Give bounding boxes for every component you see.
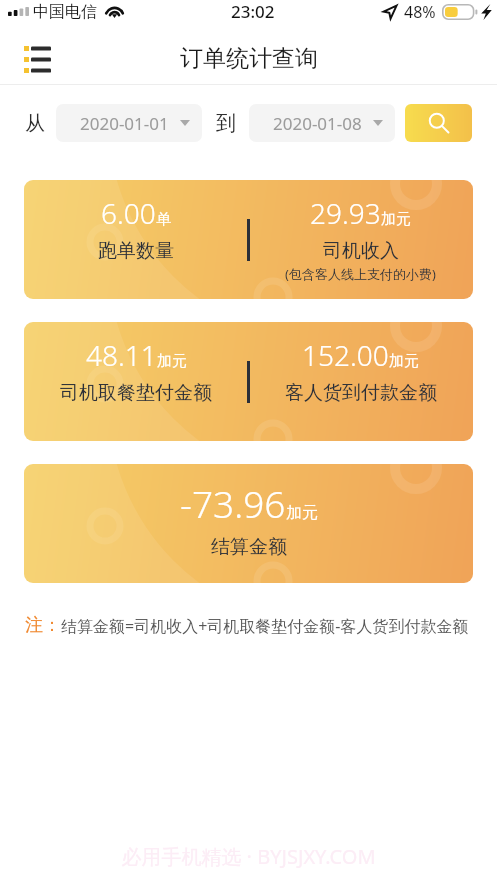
- staticText: 152.00: [302, 336, 389, 374]
- staticText: 结算金额=司机收入+司机取餐垫付金额-客人货到付款金额: [61, 615, 469, 637]
- staticText: 到: [216, 111, 236, 136]
- staticText: 29.93: [310, 194, 381, 232]
- staticText: 单: [156, 210, 171, 229]
- staticText: 6.00: [101, 194, 156, 232]
- staticText: 司机收入: [323, 239, 399, 263]
- staticText: 结算金额: [211, 535, 287, 559]
- button[interactable]: Menu: [14, 35, 62, 83]
- button[interactable]: -73.96: [24, 464, 473, 583]
- staticText: 注：: [25, 614, 61, 637]
- staticText: 48%: [404, 1, 436, 23]
- staticText: 从: [25, 111, 45, 136]
- staticText: (包含客人线上支付的小费): [285, 265, 436, 283]
- staticText: 必用手机精选 · BYJSJXY.COM: [121, 843, 376, 870]
- staticText: 加元: [157, 352, 187, 371]
- staticText: 中国电信: [33, 2, 97, 22]
- staticText: 司机取餐垫付金额: [60, 381, 212, 405]
- staticText: 加元: [286, 503, 318, 523]
- staticText: 2020-01-01: [80, 112, 169, 135]
- staticText: 订单统计查询: [180, 44, 318, 73]
- staticText: 2020-01-08: [273, 112, 362, 135]
- button[interactable]: 48.11: [24, 322, 473, 441]
- staticText: 跑单数量: [98, 239, 174, 263]
- button[interactable]: 6.00: [24, 180, 473, 299]
- staticText: -73.96: [180, 478, 286, 528]
- staticText: 23:02: [231, 0, 275, 23]
- staticText: 加元: [381, 210, 411, 229]
- button[interactable]: 2020-01-01: [56, 104, 202, 142]
- staticText: 客人货到付款金额: [285, 381, 437, 405]
- button[interactable]: 2020-01-08: [249, 104, 395, 142]
- staticText: 48.11: [86, 336, 157, 374]
- staticText: 加元: [389, 352, 419, 371]
- button[interactable]: Search: [405, 104, 472, 142]
